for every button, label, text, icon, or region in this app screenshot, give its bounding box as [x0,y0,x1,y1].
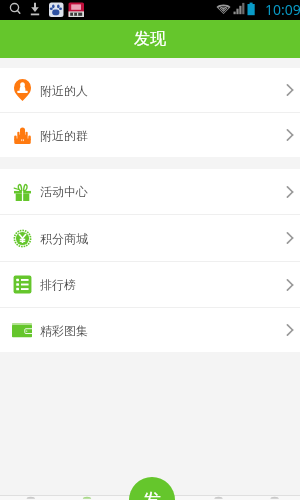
button[interactable]: 活动中心 [0,169,300,214]
staticText: 发现 [134,29,166,49]
button[interactable]: Discover [176,495,238,500]
button[interactable]: 附近的人 [0,68,300,112]
button[interactable]: Contacts [61,495,122,500]
staticText: 附近的人 [40,83,88,98]
staticText: 附近的群 [40,128,88,143]
staticText: 10:09 [265,0,300,19]
staticText: 精彩图集 [40,323,88,338]
staticText: 排行榜 [40,277,76,292]
staticText: 积分商城 [40,231,88,246]
staticText: 活动中心 [40,184,88,199]
button[interactable]: 附近的群 [0,113,300,157]
staticText: 发 [143,489,161,500]
button[interactable]: 排行榜 [0,262,300,307]
button[interactable]: Me [238,495,300,500]
button[interactable]: 精彩图集 [0,308,300,352]
button[interactable]: Chats [0,495,61,500]
button[interactable]: 积分商城 [0,215,300,261]
button[interactable]: Compose [129,477,175,500]
